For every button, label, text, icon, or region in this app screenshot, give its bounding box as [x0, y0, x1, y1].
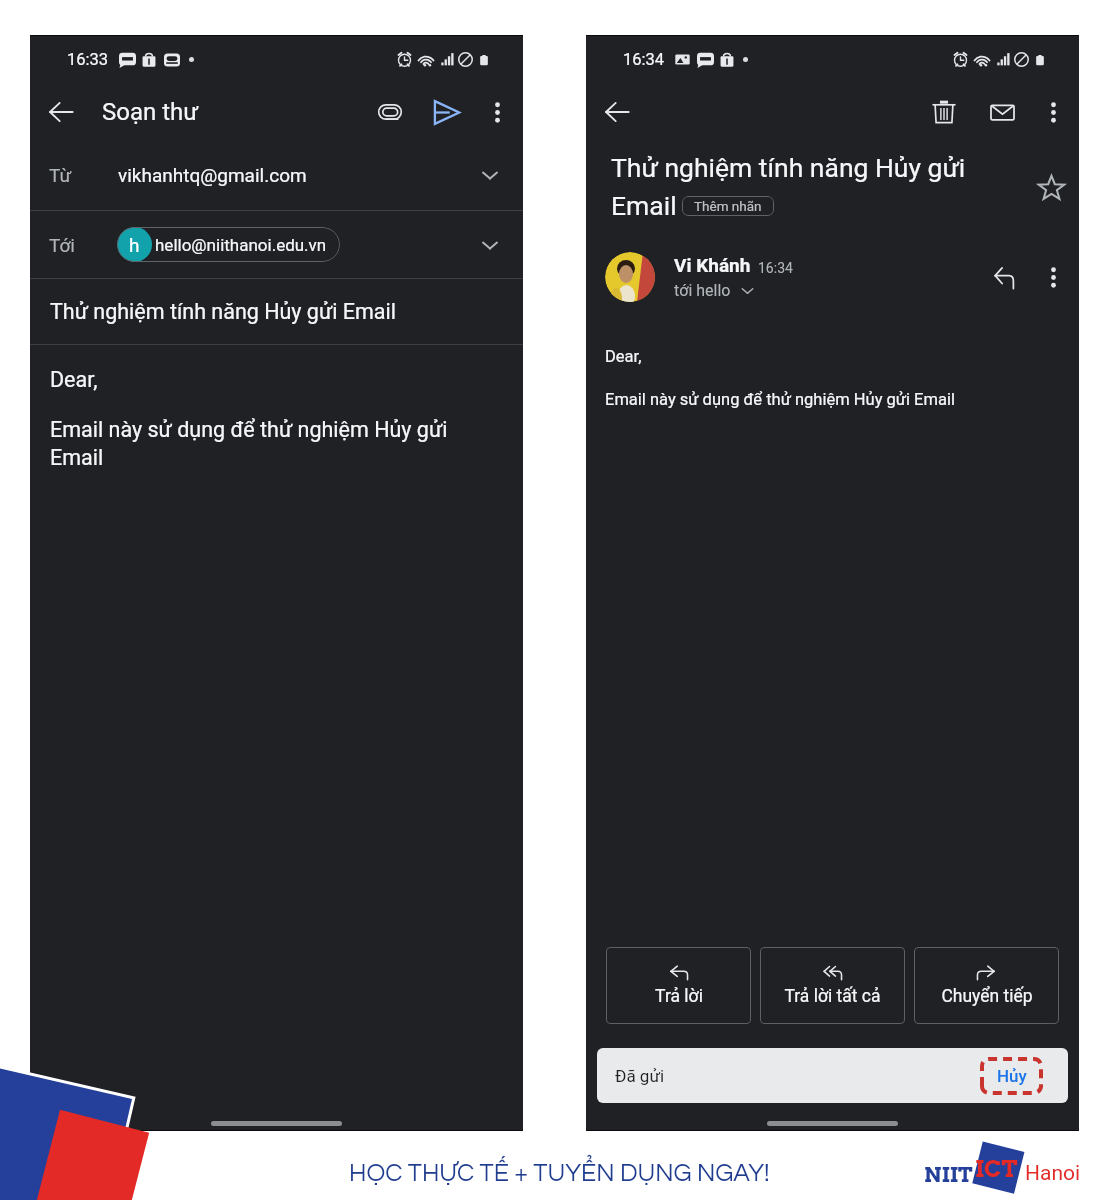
staticText: 16:34	[758, 260, 793, 276]
staticText: Email này sử dụng để thử nghiệm Hủy gửi …	[605, 390, 955, 409]
button[interactable]: Mark as unread	[980, 90, 1024, 134]
staticText: h	[129, 234, 140, 256]
staticText: Chuyển tiếp	[941, 986, 1033, 1007]
staticText: Dear,	[605, 347, 642, 366]
staticText: Vi Khánh	[674, 254, 751, 276]
button[interactable]: Thêm nhãn	[682, 196, 774, 216]
staticText: Thử nghiệm tính năng Hủy gửi	[611, 152, 966, 183]
staticText: ICT	[975, 1155, 1018, 1183]
staticText: HỌC THỰC TẾ + TUYỂN DỤNG NGAY!	[349, 1160, 770, 1186]
staticText: vikhanhtq@gmail.com	[118, 164, 307, 186]
button[interactable]: Chuyển tiếp	[914, 947, 1059, 1024]
button[interactable]: Star	[1029, 165, 1073, 209]
staticText: Trả lời tất cả	[784, 986, 881, 1007]
button[interactable]: Hủy	[982, 1059, 1041, 1093]
button[interactable]: Trả lời tất cả	[760, 947, 905, 1024]
button[interactable]: Back	[39, 90, 83, 134]
staticText: Thử nghiệm tính năng Hủy gửi Email	[50, 299, 397, 324]
button[interactable]: More options	[1031, 255, 1075, 299]
staticText: Hủy	[997, 1066, 1027, 1086]
button[interactable]: More options	[1031, 90, 1075, 134]
button[interactable]: Từ	[30, 140, 523, 210]
staticText: 16:33	[67, 50, 109, 69]
staticText: Đã gửi	[615, 1066, 665, 1086]
staticText: tới hello	[674, 281, 731, 300]
button[interactable]: More options	[475, 90, 519, 134]
button[interactable]: Thử nghiệm tính năng Hủy gửi Email	[30, 279, 523, 344]
button[interactable]: Back	[595, 90, 639, 134]
staticText: Email	[611, 190, 677, 221]
button[interactable]: Send	[424, 90, 468, 134]
staticText: Thêm nhãn	[694, 198, 762, 214]
staticText: Dear,	[50, 367, 98, 392]
staticText: hello@niithanoi.edu.vn	[155, 235, 327, 255]
staticText: Từ	[49, 164, 72, 186]
staticText: Trả lời	[655, 986, 703, 1007]
staticText: Soạn thư	[102, 98, 199, 126]
button[interactable]: Delete	[922, 90, 966, 134]
button[interactable]: Reply	[981, 255, 1025, 299]
button[interactable]: Attach file	[368, 90, 412, 134]
button[interactable]: Tới	[30, 211, 523, 278]
staticText: Hanoi	[1025, 1161, 1081, 1186]
staticText: NIIT	[924, 1162, 973, 1187]
staticText: Tới	[49, 234, 75, 256]
staticText: Email này sử dụng để thử nghiệm Hủy gửi …	[50, 417, 489, 470]
button[interactable]: Trả lời	[606, 947, 751, 1024]
staticText: 16:34	[623, 50, 665, 69]
